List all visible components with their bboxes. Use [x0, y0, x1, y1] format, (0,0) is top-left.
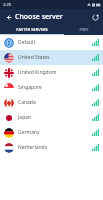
- staticText: 2:25: [3, 2, 11, 7]
- staticText: Japan: [18, 114, 92, 121]
- button[interactable]: Japan: [0, 110, 103, 125]
- staticText: FASTER SERVERS: [16, 27, 48, 32]
- button[interactable]: United Kingdom: [0, 65, 103, 80]
- staticText: Netherlands: [18, 144, 92, 151]
- button[interactable]: FASTER SERVERS: [0, 25, 64, 34]
- button[interactable]: United States: [0, 50, 103, 65]
- staticText: Choose server: [15, 12, 63, 22]
- staticText: Default: [18, 39, 92, 46]
- staticText: United Kingdom: [18, 69, 92, 76]
- staticText: FREE: [79, 27, 89, 32]
- button[interactable]: Singapore: [0, 80, 103, 95]
- button[interactable]: Refresh: [89, 11, 101, 23]
- button[interactable]: Default: [0, 35, 103, 50]
- button[interactable]: Back: [2, 11, 14, 23]
- staticText: Singapore: [18, 84, 92, 91]
- button[interactable]: FREE: [64, 25, 103, 34]
- staticText: Germany: [18, 129, 92, 136]
- button[interactable]: Canada: [0, 95, 103, 110]
- staticText: United States: [18, 54, 92, 61]
- staticText: Canada: [18, 99, 92, 106]
- button[interactable]: Germany: [0, 125, 103, 140]
- button[interactable]: Netherlands: [0, 140, 103, 155]
